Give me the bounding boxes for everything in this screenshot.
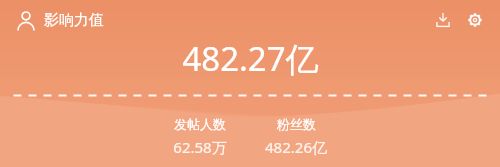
staticText: 62.58万 <box>173 137 227 157</box>
staticText: 粉丝数 <box>277 116 316 132</box>
button[interactable]: Download <box>430 7 456 33</box>
staticText: 发帖人数 <box>174 116 226 132</box>
button[interactable]: 发帖人数 <box>167 114 233 159</box>
button[interactable]: 粉丝数 <box>259 114 333 159</box>
staticText: 影响力值 <box>44 11 104 30</box>
button[interactable]: Settings <box>462 7 488 33</box>
staticText: 482.27亿 <box>182 36 319 81</box>
staticText: 482.26亿 <box>265 137 327 157</box>
button[interactable]: 影响力值 <box>14 6 106 34</box>
